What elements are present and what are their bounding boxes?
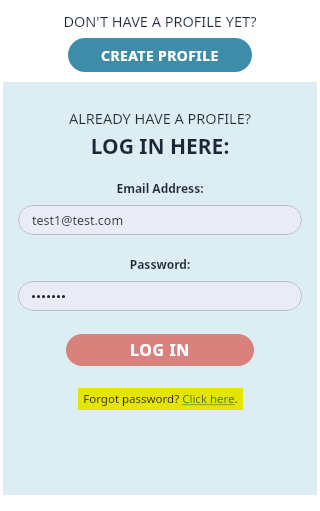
- button[interactable]: [18, 281, 302, 311]
- button[interactable]: CREATE PROFILE: [68, 38, 252, 72]
- staticText: Forgot password? Click here.: [83, 391, 238, 407]
- staticText: LOG IN: [130, 339, 190, 361]
- button[interactable]: Forgot password? Click here.: [78, 388, 243, 410]
- staticText: LOG IN HERE:: [18, 132, 302, 161]
- staticText: test1@test.com: [32, 212, 124, 229]
- staticText: Password:: [18, 256, 302, 272]
- staticText: CREATE PROFILE: [101, 46, 219, 65]
- staticText: Email Address:: [18, 180, 302, 196]
- button[interactable]: LOG IN: [66, 334, 254, 366]
- staticText: DON'T HAVE A PROFILE YET?: [0, 11, 320, 31]
- staticText: ALREADY HAVE A PROFILE?: [18, 108, 302, 128]
- button[interactable]: test1@test.com: [18, 205, 302, 235]
